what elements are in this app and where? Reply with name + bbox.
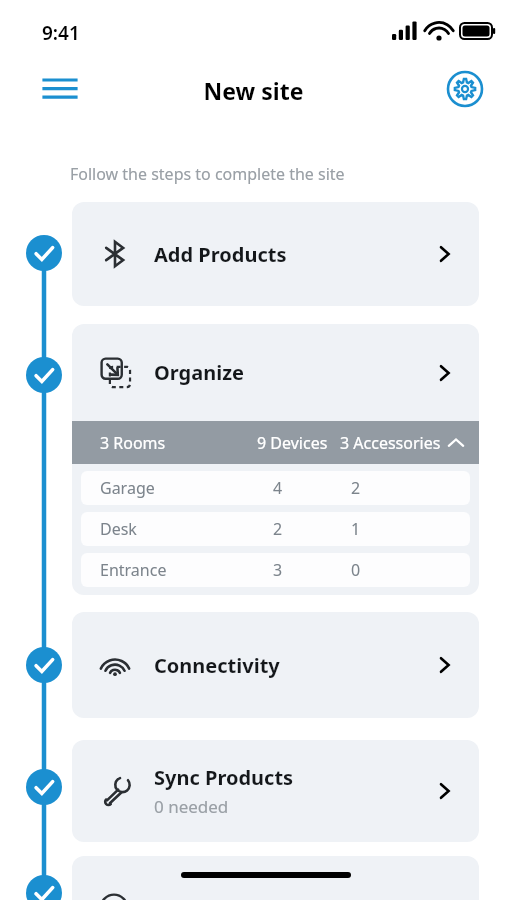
- button[interactable]: Add Products: [72, 202, 479, 306]
- button[interactable]: Step complete: [26, 875, 62, 900]
- staticText: Add Products: [154, 241, 287, 268]
- staticText: 1: [351, 518, 361, 540]
- staticText: 3: [273, 559, 283, 581]
- staticText: 9:41: [42, 20, 80, 46]
- staticText: Connectivity: [154, 652, 280, 679]
- staticText: Follow the steps to complete the site: [70, 163, 345, 185]
- staticText: Desk: [100, 518, 137, 540]
- staticText: 4: [273, 477, 283, 499]
- staticText: 9 Devices: [257, 432, 328, 454]
- button[interactable]: Settings: [442, 66, 488, 112]
- button[interactable]: 3 Rooms: [72, 421, 479, 464]
- button[interactable]: Step complete: [26, 769, 62, 805]
- button[interactable]: Handover: [72, 856, 479, 900]
- button[interactable]: Connectivity: [72, 612, 479, 718]
- button[interactable]: Organize: [72, 324, 479, 421]
- button[interactable]: Entrance: [81, 553, 470, 587]
- staticText: Organize: [154, 359, 244, 386]
- staticText: New site: [0, 75, 507, 106]
- staticText: Entrance: [100, 559, 167, 581]
- button[interactable]: Sync Products: [72, 740, 479, 842]
- button[interactable]: Desk: [81, 512, 470, 546]
- button[interactable]: Step complete: [26, 357, 62, 393]
- button[interactable]: Step complete: [26, 235, 62, 271]
- staticText: 2: [273, 518, 283, 540]
- button[interactable]: Garage: [81, 471, 470, 505]
- staticText: 3 Accessories: [340, 432, 441, 454]
- staticText: 0 needed: [154, 795, 229, 818]
- staticText: 0: [351, 559, 361, 581]
- staticText: Sync Products: [154, 764, 294, 791]
- button[interactable]: Step complete: [26, 647, 62, 683]
- staticText: Garage: [100, 477, 155, 499]
- staticText: 3 Rooms: [100, 432, 166, 454]
- staticText: 2: [351, 477, 361, 499]
- button[interactable]: Menu: [34, 66, 86, 112]
